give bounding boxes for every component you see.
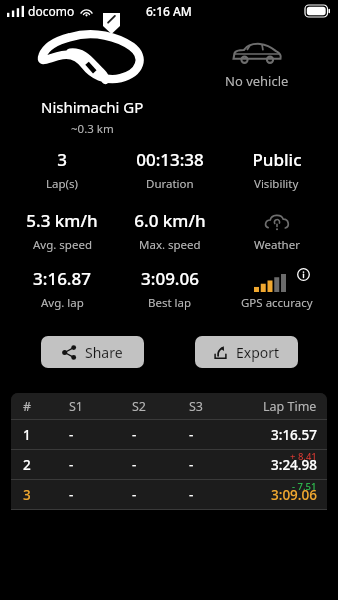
staticText: 3: [23, 486, 31, 504]
staticText: 3:09.06: [271, 486, 317, 504]
staticText: + 8.41: [290, 450, 317, 463]
button[interactable]: Export: [195, 336, 298, 368]
staticText: -: [132, 456, 137, 474]
staticText: Max. speed: [139, 237, 201, 253]
staticText: S3: [189, 398, 204, 415]
staticText: -: [189, 456, 194, 474]
staticText: No vehicle: [225, 72, 289, 90]
staticText: 3:09.06: [141, 267, 199, 290]
staticText: GPS accuracy: [241, 295, 313, 311]
button[interactable]: Select vehicle: [198, 42, 316, 90]
button[interactable]: Weather unknown: [223, 212, 330, 253]
staticText: 00:13:38: [136, 148, 204, 171]
button[interactable]: Public: [223, 148, 330, 192]
staticText: 1: [23, 426, 31, 444]
staticText: Public: [252, 148, 302, 171]
staticText: Export: [236, 343, 280, 362]
staticText: S2: [132, 398, 147, 415]
staticText: #: [23, 398, 32, 415]
staticText: 6:16 AM: [146, 3, 192, 19]
staticText: 3: [57, 148, 67, 171]
staticText: Visibility: [254, 176, 299, 192]
button[interactable]: 3: [11, 480, 327, 509]
staticText: Avg. lap: [41, 295, 84, 311]
staticText: -: [189, 426, 194, 444]
button[interactable]: GPS accuracy info: [223, 268, 330, 311]
staticText: - 7.51: [292, 480, 317, 493]
staticText: -: [132, 486, 137, 504]
staticText: S1: [69, 398, 84, 415]
button[interactable]: 2: [11, 450, 327, 479]
staticText: Share: [85, 343, 123, 362]
staticText: ~0.3 km: [71, 121, 114, 137]
staticText: 3:16.57: [271, 426, 317, 444]
staticText: docomo: [28, 3, 75, 19]
staticText: Weather: [254, 237, 300, 253]
staticText: -: [69, 426, 74, 444]
staticText: 6.0 km/h: [134, 209, 206, 232]
staticText: 2: [23, 456, 31, 474]
staticText: Nishimachi GP: [41, 97, 144, 117]
staticText: Lap(s): [46, 176, 78, 192]
staticText: -: [189, 486, 194, 504]
staticText: 3:16.87: [33, 267, 91, 290]
staticText: -: [69, 456, 74, 474]
staticText: Lap Time: [263, 398, 317, 415]
staticText: 5.3 km/h: [26, 209, 98, 232]
staticText: Best lap: [148, 295, 192, 311]
button[interactable]: Share: [41, 336, 144, 368]
staticText: 3:24.98: [271, 456, 317, 474]
staticText: -: [132, 426, 137, 444]
staticText: Duration: [146, 176, 194, 192]
staticText: Avg. speed: [33, 237, 92, 253]
button[interactable]: 1: [11, 420, 327, 449]
staticText: -: [69, 486, 74, 504]
